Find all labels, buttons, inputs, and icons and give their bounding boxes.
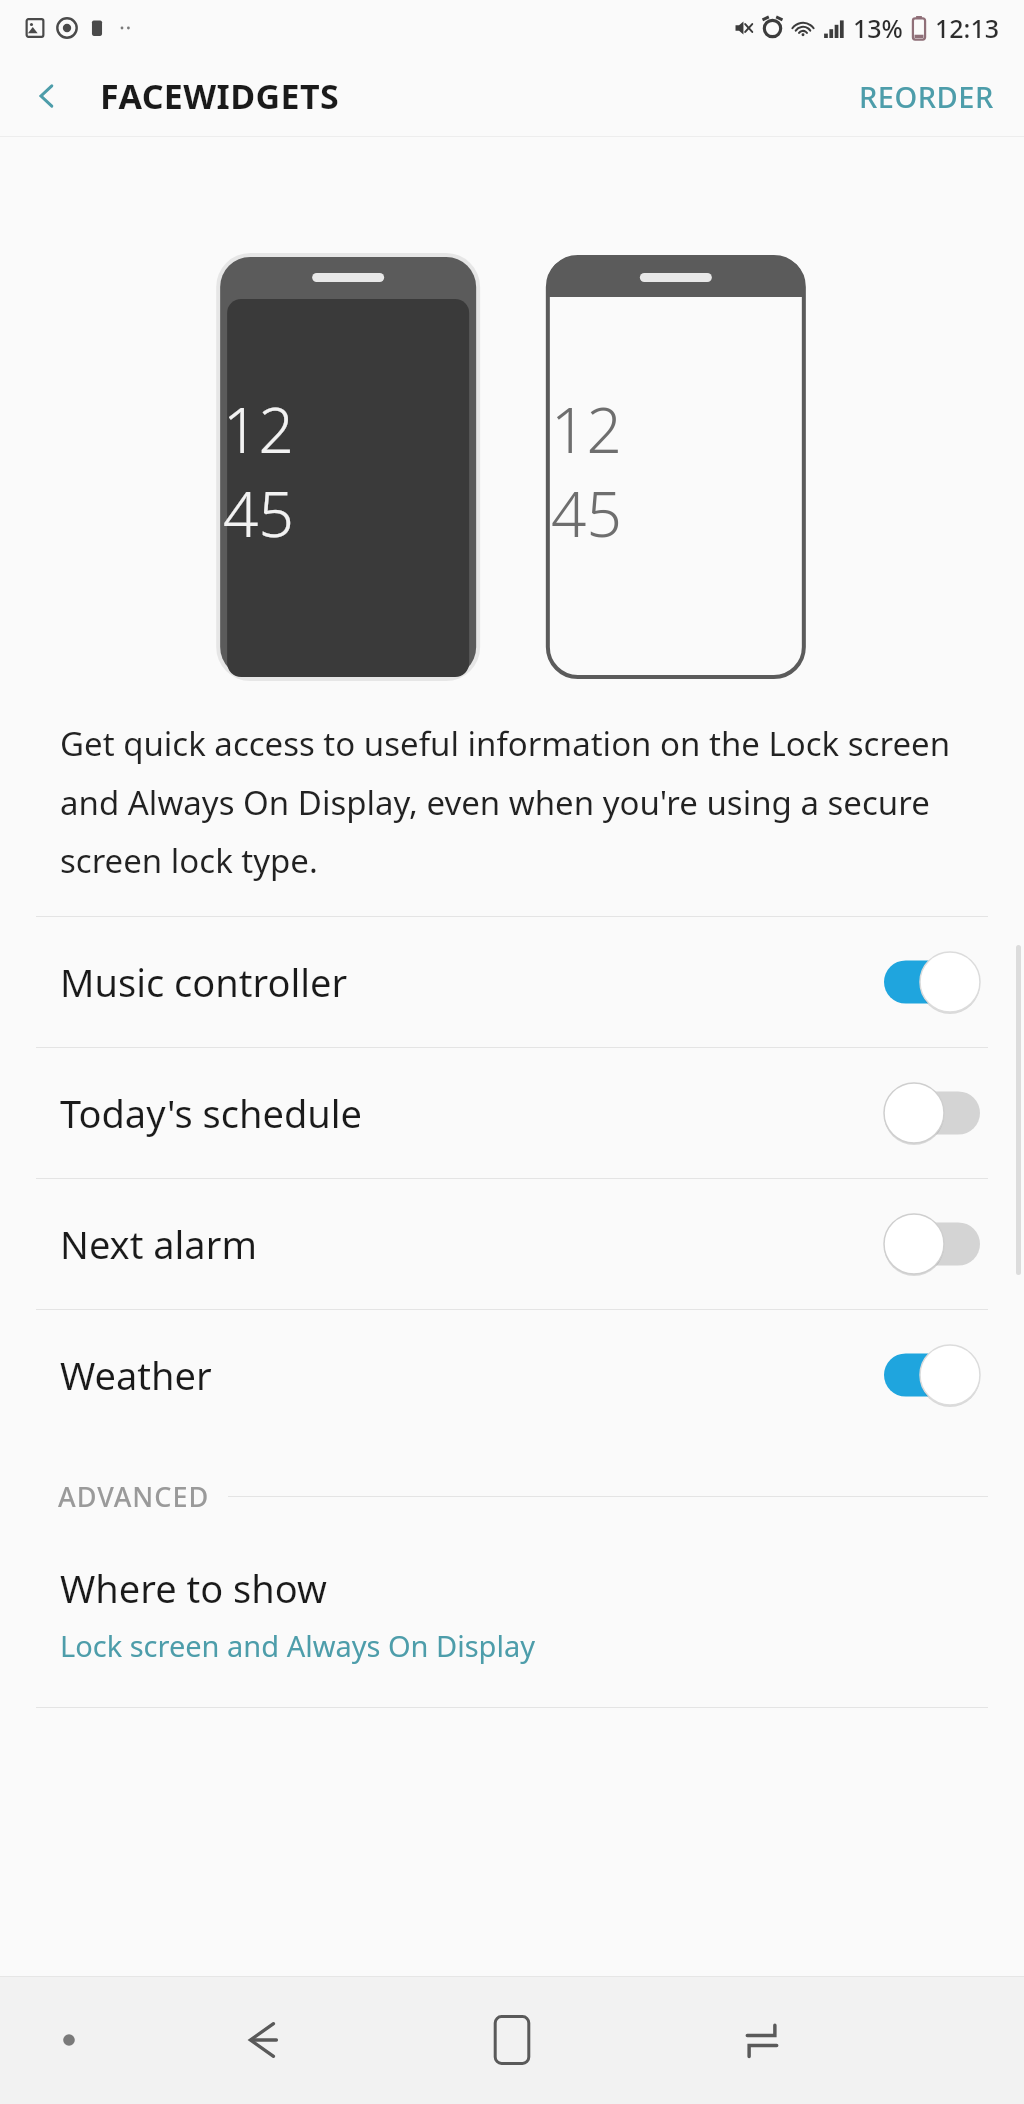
staticText: FACEWIDGETS — [100, 73, 340, 119]
button[interactable]: Recents — [637, 1976, 887, 2104]
button[interactable]: Back — [18, 67, 76, 125]
staticText: Next alarm — [60, 1218, 884, 1270]
button[interactable]: REORDER — [851, 69, 1002, 124]
staticText: Where to show — [60, 1562, 327, 1614]
button[interactable]: Music controller — [0, 917, 1024, 1047]
staticText: Lock screen and Always On Display — [60, 1626, 535, 1665]
staticText: Weather — [60, 1349, 884, 1401]
other: On — [884, 952, 980, 1012]
staticText: 45 — [551, 471, 622, 555]
staticText: 45 — [223, 471, 294, 555]
button[interactable]: Keyboard indicator — [0, 1976, 137, 2104]
button[interactable]: Where to show — [0, 1526, 1024, 1707]
staticText: ADVANCED — [58, 1478, 210, 1515]
button[interactable]: Back — [137, 1976, 387, 2104]
other: Off — [884, 1214, 980, 1274]
staticText: 13% — [853, 11, 903, 45]
staticText: Today's schedule — [60, 1087, 884, 1139]
other: Off — [884, 1083, 980, 1143]
staticText: Get quick access to useful information o… — [60, 721, 976, 882]
other: On — [884, 1345, 980, 1405]
staticText: 12 — [223, 387, 294, 471]
button[interactable]: Next alarm — [0, 1179, 1024, 1309]
staticText: REORDER — [859, 77, 994, 116]
button[interactable]: Home — [387, 1976, 637, 2104]
staticText: 12 — [551, 387, 622, 471]
staticText: 12:13 — [935, 11, 1000, 45]
button[interactable]: Today's schedule — [0, 1048, 1024, 1178]
staticText: Music controller — [60, 956, 884, 1008]
button[interactable]: Weather — [0, 1310, 1024, 1440]
